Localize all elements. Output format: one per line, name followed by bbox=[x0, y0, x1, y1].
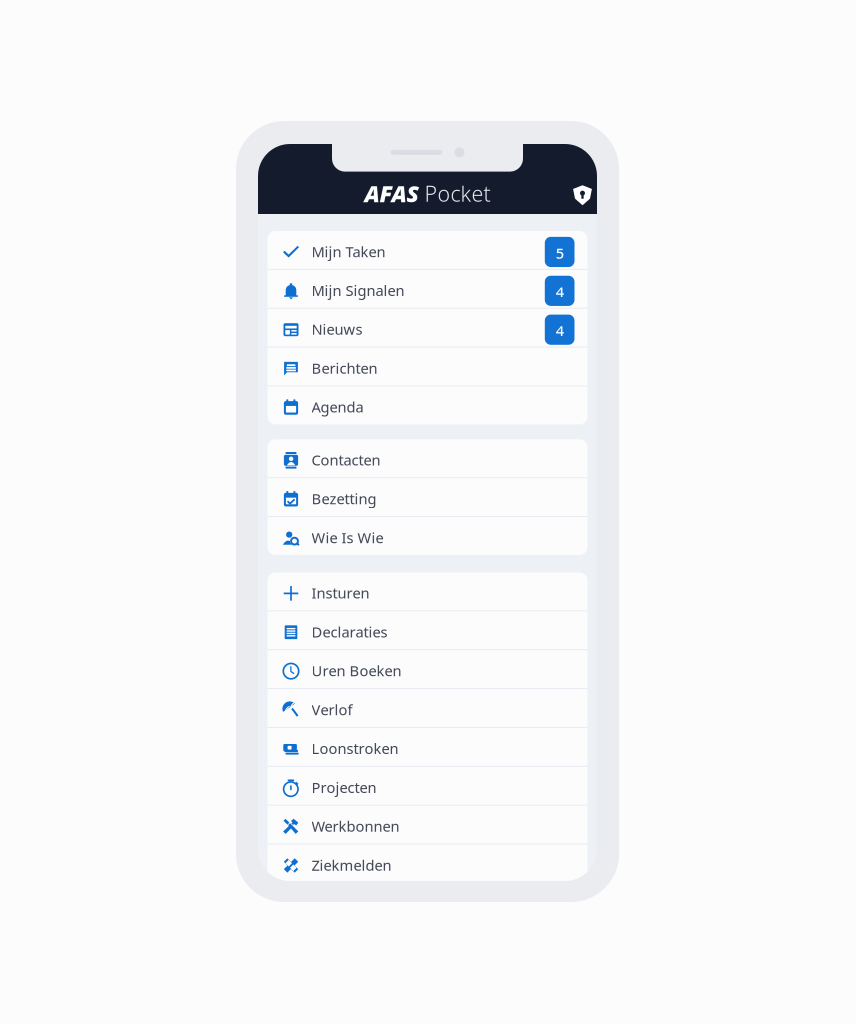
staticText: 4 bbox=[556, 321, 564, 340]
button[interactable]: Berichten bbox=[267, 348, 587, 385]
staticText: Nieuws bbox=[311, 319, 362, 339]
staticText: Loonstroken bbox=[311, 739, 398, 758]
staticText: Mijn Taken bbox=[311, 242, 385, 261]
button[interactable]: Mijn Signalen bbox=[267, 270, 587, 308]
staticText: 5 bbox=[556, 243, 564, 263]
staticText: 4 bbox=[556, 282, 564, 302]
staticText: Verlof bbox=[311, 700, 352, 719]
staticText: Contacten bbox=[311, 450, 380, 469]
staticText: Uren Boeken bbox=[311, 661, 401, 680]
button[interactable]: Uren Boeken bbox=[267, 650, 587, 688]
button[interactable]: Loonstroken bbox=[267, 728, 587, 766]
staticText: AFAS bbox=[364, 178, 418, 208]
staticText: Werkbonnen bbox=[311, 816, 399, 836]
staticText: Insturen bbox=[311, 583, 369, 603]
staticText: Agenda bbox=[311, 397, 363, 417]
button[interactable]: Agenda bbox=[267, 386, 587, 424]
button[interactable]: Ziekmelden bbox=[267, 844, 587, 882]
button[interactable]: Werkbonnen bbox=[267, 806, 587, 844]
staticText: Wie Is Wie bbox=[311, 528, 383, 547]
button[interactable]: Nieuws bbox=[267, 309, 587, 347]
button[interactable]: Insturen bbox=[267, 572, 587, 610]
staticText: Declaraties bbox=[311, 622, 387, 641]
staticText: Mijn Signalen bbox=[311, 281, 404, 300]
button[interactable]: Mijn Taken bbox=[267, 231, 587, 269]
button[interactable]: Security bbox=[572, 185, 592, 206]
staticText: Berichten bbox=[311, 358, 377, 378]
button[interactable]: Projecten bbox=[267, 767, 587, 805]
staticText: Pocket bbox=[418, 179, 490, 208]
button[interactable]: Contacten bbox=[267, 439, 587, 477]
button[interactable]: Verlof bbox=[267, 689, 587, 727]
button[interactable]: Bezetting bbox=[267, 478, 587, 516]
button[interactable]: Wie Is Wie bbox=[267, 517, 587, 555]
button[interactable]: Declaraties bbox=[267, 611, 587, 649]
staticText: Ziekmelden bbox=[311, 855, 391, 875]
staticText: Projecten bbox=[311, 777, 376, 797]
staticText: Bezetting bbox=[311, 489, 376, 508]
